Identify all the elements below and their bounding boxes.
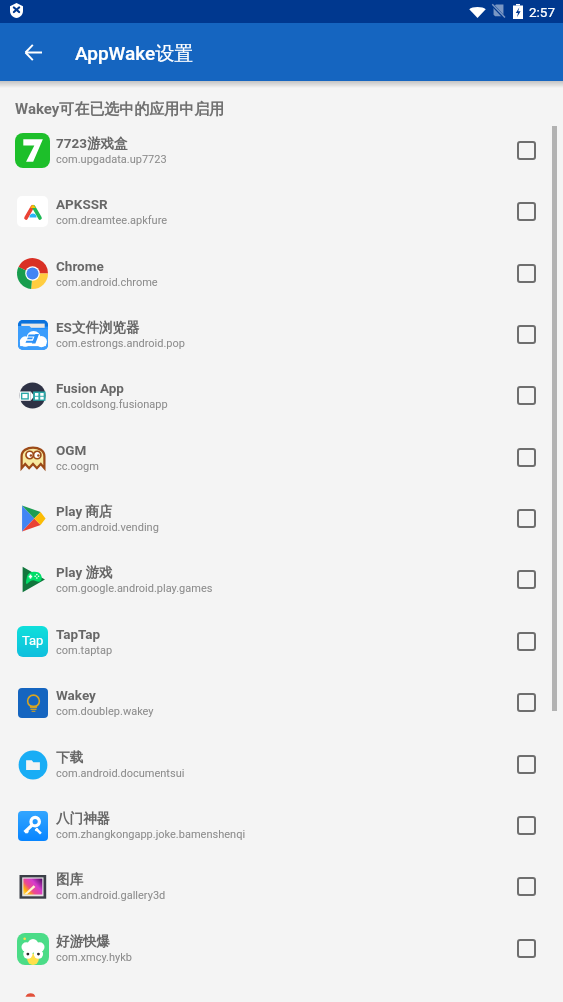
button[interactable]: Back [12, 31, 54, 73]
staticText: ES文件浏览器 [56, 319, 496, 336]
staticText: 下载 [56, 749, 496, 766]
staticText: Tap [22, 633, 44, 648]
staticText: com.zhangkongapp.joke.bamenshenqi [56, 828, 496, 841]
staticText: com.android.vending [56, 521, 496, 534]
button[interactable]: 好游快爆 [0, 917, 563, 978]
staticText: Wakey [56, 687, 496, 703]
staticText: AppWake设置 [75, 42, 194, 66]
staticText: com.xmcy.hykb [56, 951, 496, 964]
button[interactable]: Play 商店 [0, 487, 563, 548]
staticText: 好游快爆 [56, 933, 496, 950]
button[interactable]: 图库 [0, 855, 563, 916]
staticText: 2:57 [529, 4, 556, 20]
button[interactable]: Toggle 下载 [505, 743, 547, 785]
button[interactable]: Toggle Fusion App [505, 374, 547, 416]
staticText: com.android.documentsui [56, 767, 496, 780]
button[interactable]: Wakey [0, 671, 563, 732]
button[interactable]: Toggle Play 商店 [505, 497, 547, 539]
staticText: Wakey可在已选中的应用中启用 [15, 100, 225, 119]
staticText: com.taptap [56, 644, 496, 657]
button[interactable]: 7723游戏盒 [0, 119, 563, 180]
button[interactable]: Toggle OGM [505, 436, 547, 478]
staticText: Fusion App [56, 380, 496, 396]
button[interactable]: Chrome [0, 242, 563, 303]
button[interactable]: 八门神器 [0, 794, 563, 855]
button[interactable]: Toggle 图库 [505, 865, 547, 907]
button[interactable]: APKSSR [0, 180, 563, 241]
staticText: cn.coldsong.fusionapp [56, 398, 496, 411]
staticText: Play 商店 [56, 503, 496, 520]
button[interactable]: Toggle 7723游戏盒 [505, 129, 547, 171]
staticText: com.estrongs.android.pop [56, 337, 496, 350]
staticText: APKSSR [56, 196, 496, 212]
button[interactable]: OGM [0, 426, 563, 487]
staticText: 7723游戏盒 [56, 135, 496, 152]
staticText: com.doublep.wakey [56, 705, 496, 718]
staticText: com.android.chrome [56, 276, 496, 289]
staticText: cc.oogm [56, 460, 496, 473]
staticText: com.google.android.play.games [56, 582, 496, 595]
staticText: Play 游戏 [56, 564, 496, 581]
button[interactable]: ES文件浏览器 [0, 303, 563, 364]
button[interactable]: Fusion App [0, 364, 563, 425]
button[interactable]: Tap [0, 610, 563, 671]
button[interactable]: Toggle ES文件浏览器 [505, 313, 547, 355]
button[interactable]: Toggle Play 游戏 [505, 558, 547, 600]
staticText: 图库 [56, 871, 496, 888]
button[interactable]: Toggle APKSSR [505, 190, 547, 232]
staticText: OGM [56, 442, 496, 458]
button[interactable]: Toggle Chrome [505, 252, 547, 294]
button[interactable]: 下载 [0, 733, 563, 794]
button[interactable]: Toggle Wakey [505, 681, 547, 723]
staticText: 八门神器 [56, 810, 496, 827]
staticText: Chrome [56, 258, 496, 274]
staticText: com.dreamtee.apkfure [56, 214, 496, 227]
button[interactable]: Play 游戏 [0, 548, 563, 609]
staticText: com.upgadata.up7723 [56, 153, 496, 166]
button[interactable]: Toggle 八门神器 [505, 804, 547, 846]
button[interactable]: Toggle TapTap [505, 620, 547, 662]
staticText: TapTap [56, 626, 496, 642]
button[interactable]: Toggle 好游快爆 [505, 927, 547, 969]
staticText: com.android.gallery3d [56, 889, 496, 902]
